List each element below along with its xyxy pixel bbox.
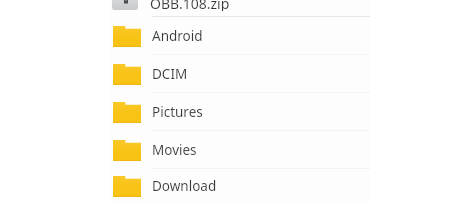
button[interactable]: DCIM bbox=[110, 55, 370, 93]
staticText: Download bbox=[152, 177, 217, 195]
button[interactable]: Archive file bbox=[110, 0, 370, 17]
staticText: Android bbox=[152, 27, 203, 45]
other: Archive file bbox=[112, 0, 138, 10]
staticText: DCIM bbox=[152, 65, 188, 83]
button[interactable]: Movies bbox=[110, 131, 370, 169]
staticText: OBB.108.zip bbox=[150, 0, 230, 11]
button[interactable]: Download bbox=[110, 169, 370, 203]
button[interactable]: Pictures bbox=[110, 93, 370, 131]
staticText: Movies bbox=[152, 141, 197, 159]
button[interactable]: Android bbox=[110, 17, 370, 55]
staticText: Pictures bbox=[152, 103, 203, 121]
